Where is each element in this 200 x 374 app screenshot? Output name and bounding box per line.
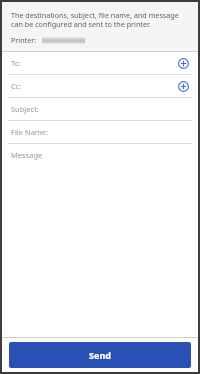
button[interactable]: Cc: xyxy=(2,75,198,97)
button[interactable]: Add recipient xyxy=(174,54,192,72)
staticText: Subject: xyxy=(11,104,39,114)
button[interactable]: Add Cc recipient xyxy=(174,77,192,95)
button[interactable]: To: xyxy=(2,52,198,74)
staticText: To: xyxy=(11,58,22,68)
button[interactable]: Send xyxy=(9,342,191,368)
button[interactable]: Subject: xyxy=(2,98,198,120)
button[interactable]: File Name: xyxy=(2,121,198,143)
staticText: Send xyxy=(89,349,111,361)
staticText: The destinations, subject, file name, an… xyxy=(11,10,189,30)
staticText: Message xyxy=(11,150,43,160)
staticText: Printer: xyxy=(11,35,37,45)
button[interactable]: Message xyxy=(2,144,198,166)
staticText: Cc: xyxy=(11,81,22,91)
staticText: File Name: xyxy=(11,127,49,137)
